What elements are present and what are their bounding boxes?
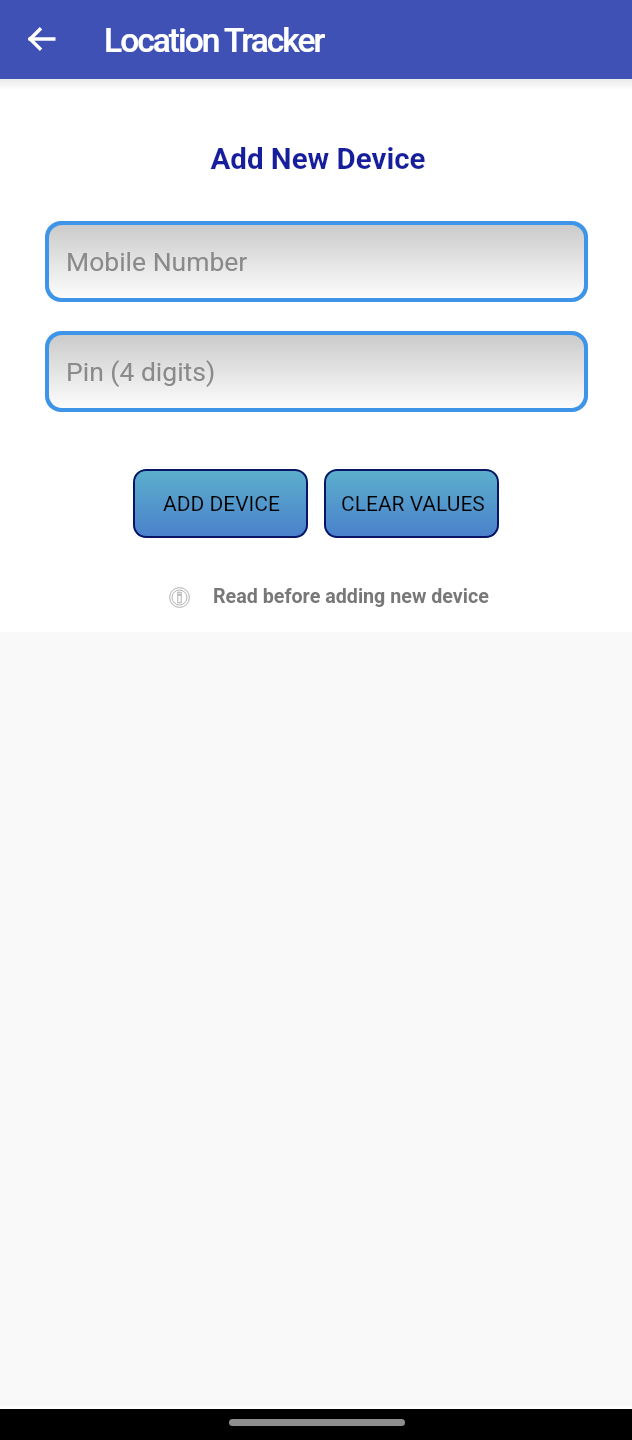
staticText: ADD DEVICE <box>163 492 280 517</box>
staticText: Read before adding new device <box>213 585 489 608</box>
staticText: Mobile Number <box>66 246 248 277</box>
button[interactable]: Back <box>17 14 66 63</box>
button[interactable]: Pin (4 digits) <box>49 335 584 408</box>
staticText: CLEAR VALUES <box>341 492 485 517</box>
staticText: Location Tracker <box>104 21 324 60</box>
staticText: Add New Device <box>2 142 632 177</box>
button[interactable]: Mobile Number <box>49 225 584 298</box>
button[interactable]: CLEAR VALUES <box>324 469 499 538</box>
button[interactable]: ADD DEVICE <box>133 469 308 538</box>
staticText: Pin (4 digits) <box>66 356 216 387</box>
button[interactable]: Read before adding new device <box>167 585 489 608</box>
